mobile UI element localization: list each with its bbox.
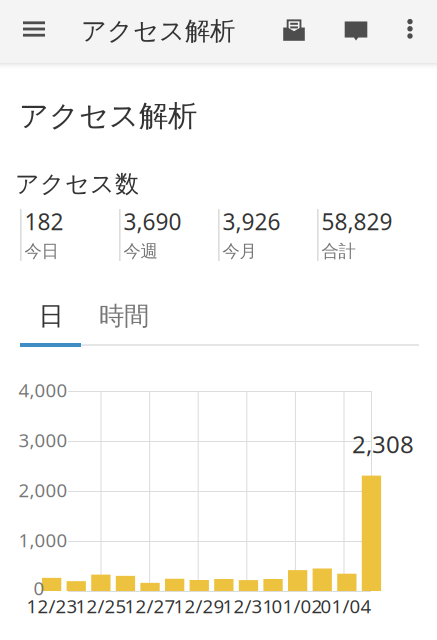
staticText: 4,000 bbox=[18, 378, 67, 402]
button[interactable]: Menu bbox=[10, 5, 58, 53]
staticText: 12/29 bbox=[173, 594, 224, 618]
button[interactable]: 日 bbox=[20, 296, 82, 336]
button[interactable]: 時間 bbox=[82, 296, 166, 336]
staticText: 3,690 bbox=[123, 206, 181, 237]
staticText: 2,000 bbox=[18, 478, 67, 502]
staticText: 今日 bbox=[24, 241, 58, 262]
staticText: 今週 bbox=[123, 241, 157, 262]
button[interactable]: More options bbox=[390, 5, 430, 53]
staticText: 12/25 bbox=[75, 594, 126, 618]
staticText: 3,926 bbox=[222, 206, 280, 237]
staticText: 12/27 bbox=[124, 594, 175, 618]
staticText: 1,000 bbox=[18, 528, 67, 552]
staticText: 01/04 bbox=[320, 594, 371, 618]
staticText: 合計 bbox=[321, 241, 355, 262]
staticText: 3,000 bbox=[18, 428, 67, 452]
staticText: 2,308 bbox=[352, 428, 414, 460]
staticText: アクセス解析 bbox=[19, 98, 197, 134]
staticText: アクセス解析 bbox=[81, 15, 235, 46]
staticText: 12/31 bbox=[222, 594, 273, 618]
staticText: 58,829 bbox=[321, 206, 392, 237]
button[interactable]: Comments bbox=[333, 7, 379, 55]
staticText: 日 bbox=[38, 300, 63, 331]
staticText: 時間 bbox=[99, 300, 149, 331]
staticText: 182 bbox=[24, 206, 63, 237]
button[interactable]: Inbox bbox=[271, 5, 317, 53]
staticText: 12/23 bbox=[26, 594, 77, 618]
staticText: 0 bbox=[33, 576, 44, 600]
staticText: 今月 bbox=[222, 241, 256, 262]
staticText: 01/02 bbox=[271, 594, 322, 618]
staticText: アクセス数 bbox=[15, 169, 139, 199]
